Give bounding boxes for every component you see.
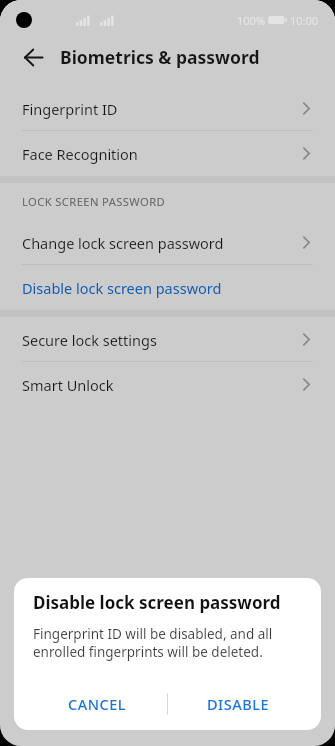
button[interactable]: CANCEL (27, 681, 167, 727)
staticText: 10:00 (290, 13, 319, 28)
staticText: Disable lock screen password (22, 278, 222, 298)
staticText: Face Recognition (22, 144, 138, 164)
staticText: Change lock screen password (22, 233, 224, 253)
staticText: Fingerprint ID will be disabled, and all… (33, 625, 273, 661)
button[interactable]: Secure lock settings (0, 317, 335, 362)
button[interactable]: Smart Unlock (0, 362, 335, 407)
staticText: Smart Unlock (22, 375, 114, 395)
staticText: Biometrics & password (60, 45, 260, 69)
staticText: Secure lock settings (22, 330, 157, 350)
staticText: LOCK SCREEN PASSWORD (22, 194, 166, 209)
staticText: DISABLE (207, 694, 270, 714)
button[interactable]: Disable lock screen password (0, 265, 335, 310)
staticText: 100% (237, 13, 266, 28)
button[interactable]: DISABLE (168, 681, 308, 727)
staticText: Disable lock screen password (33, 591, 281, 614)
button[interactable] (24, 48, 43, 67)
button[interactable]: Fingerprint ID (0, 86, 335, 131)
staticText: CANCEL (68, 694, 126, 714)
button[interactable]: Face Recognition (0, 131, 335, 176)
button[interactable]: Change lock screen password (0, 220, 335, 265)
staticText: Fingerprint ID (22, 99, 118, 119)
